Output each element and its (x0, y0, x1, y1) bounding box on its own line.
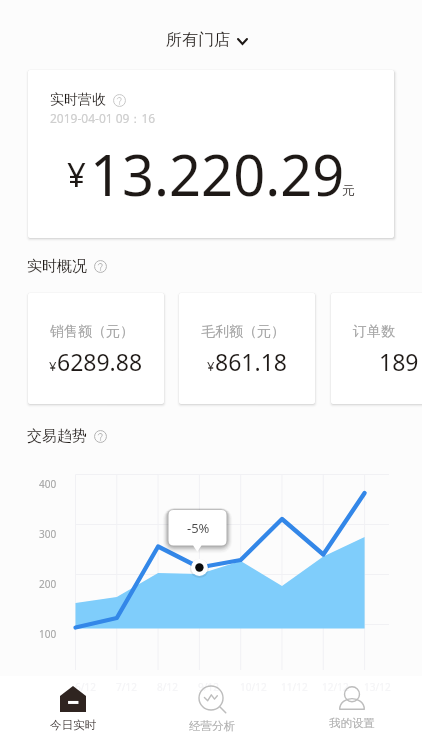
staticText: 我的设置 (329, 716, 375, 730)
staticText: 所有门店 (166, 30, 230, 50)
staticText: 销售额（元） (50, 323, 134, 341)
staticText: 订单数 (353, 323, 395, 341)
staticText: 毛利额（元） (201, 323, 285, 341)
other: 经营分析 (199, 686, 226, 713)
staticText: 861.18 (215, 346, 287, 377)
staticText: 13.220.29 (90, 136, 345, 212)
staticText: 100 (39, 627, 57, 641)
staticText: 实时概况 (27, 257, 87, 276)
staticText: ¥ (207, 357, 215, 375)
staticText: 7/12 (116, 680, 137, 694)
staticText: 300 (39, 527, 57, 541)
staticText: 9/12 (198, 680, 219, 694)
button[interactable]: 毛利额（元） (179, 293, 315, 404)
staticText: 13/12 (364, 680, 391, 694)
button[interactable]: 实时营收 (28, 70, 394, 238)
staticText: 2019-04-01 09：16 (50, 110, 156, 126)
button[interactable]: 我的设置 (282, 676, 422, 750)
staticText: 元 (342, 182, 355, 198)
button[interactable]: 今日实时 (3, 676, 142, 750)
staticText: 200 (39, 577, 57, 591)
staticText: 12/12 (322, 680, 349, 694)
staticText: ¥ (67, 152, 86, 197)
staticText: 189 (379, 346, 419, 377)
button[interactable]: 订单数 (331, 293, 422, 404)
staticText: 10/12 (240, 680, 267, 694)
staticText: 经营分析 (189, 719, 235, 733)
other: 我的设置 (339, 686, 365, 710)
button[interactable]: 销售额（元） (28, 293, 164, 404)
staticText: 400 (39, 477, 57, 491)
staticText: 8/12 (157, 680, 178, 694)
staticText: 11/12 (281, 680, 308, 694)
button[interactable]: 经营分析 (142, 676, 282, 750)
other: 今日实时 (60, 686, 86, 712)
staticText: 6/12 (75, 680, 96, 694)
button[interactable]: 所有门店 (158, 26, 256, 54)
staticText: -5% (187, 519, 210, 537)
staticText: 6289.88 (57, 346, 143, 377)
staticText: 今日实时 (50, 718, 96, 732)
staticText: 交易趋势 (27, 427, 87, 446)
staticText: ¥ (49, 357, 57, 375)
staticText: 实时营收 (50, 91, 106, 109)
